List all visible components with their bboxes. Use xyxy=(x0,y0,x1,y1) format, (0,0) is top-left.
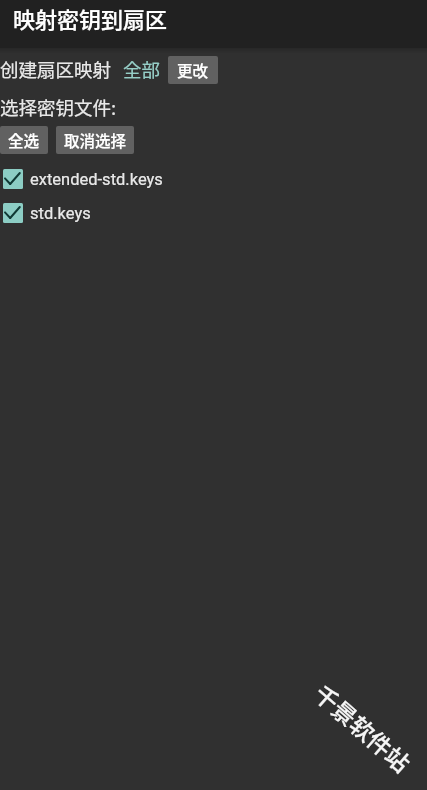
staticText: 取消选择 xyxy=(64,129,127,151)
button[interactable]: 全选 xyxy=(0,126,48,154)
staticText: extended-std.keys xyxy=(30,170,163,189)
staticText: 映射密钥到扇区 xyxy=(13,2,168,34)
staticText: 千景软件站 xyxy=(307,676,419,780)
staticText: 全选 xyxy=(8,129,40,151)
staticText: 全部 xyxy=(123,56,161,83)
button[interactable]: Selected xyxy=(0,162,427,196)
staticText: 更改 xyxy=(177,59,209,81)
button[interactable]: 更改 xyxy=(168,56,218,84)
button[interactable]: 取消选择 xyxy=(56,126,134,154)
staticText: 选择密钥文件: xyxy=(0,94,117,121)
button[interactable]: Selected xyxy=(0,196,427,230)
button[interactable]: 映射密钥到扇区 xyxy=(0,0,427,48)
other: Selected xyxy=(3,169,23,189)
staticText: 创建扇区映射 xyxy=(0,56,112,83)
other: Selected xyxy=(3,203,23,223)
staticText: std.keys xyxy=(30,204,91,223)
